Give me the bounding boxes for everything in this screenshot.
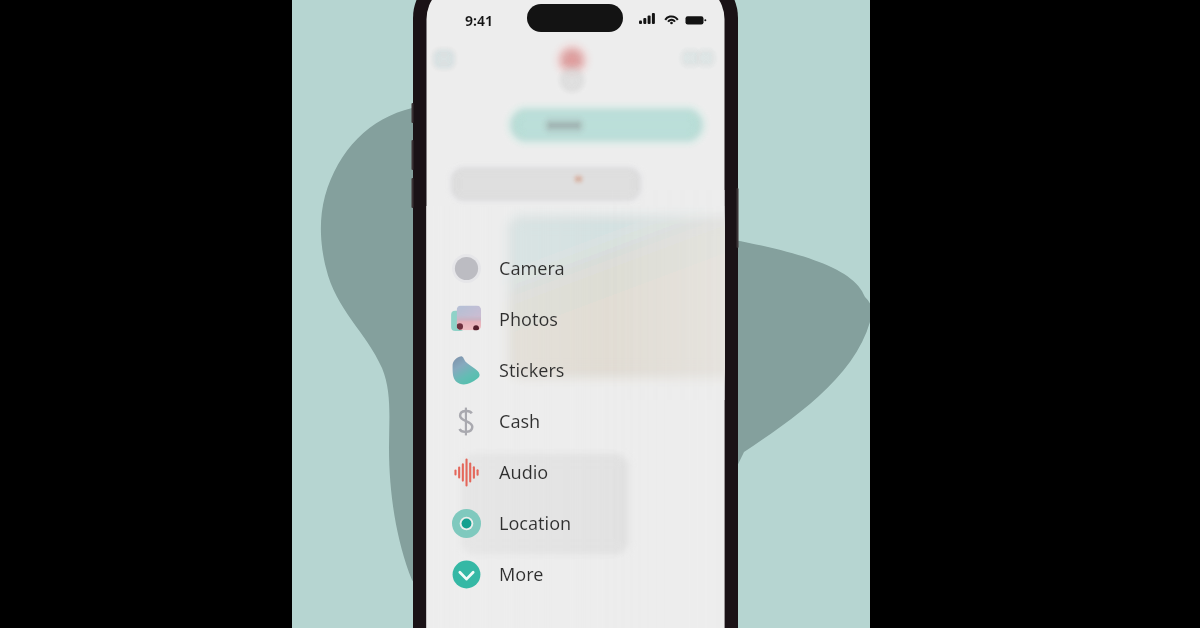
other: Stickers [452,356,481,385]
staticText: Location [499,511,572,536]
staticText: Photos [499,307,558,332]
button[interactable]: Camera [426,243,725,294]
staticText: Camera [499,256,565,281]
other: Cash [452,407,481,436]
button[interactable]: More [426,549,725,600]
staticText: Stickers [499,358,565,383]
staticText: 9:41 [465,11,493,30]
button[interactable]: Audio [426,447,725,498]
other: Audio [452,458,481,487]
other: Location [452,509,481,538]
staticText: More [499,562,544,587]
staticText: Audio [499,460,549,485]
other: Camera [452,254,481,283]
button[interactable]: Stickers [426,345,725,396]
button[interactable]: Location [426,498,725,549]
other: More [452,560,481,589]
other: Photos [452,305,481,334]
staticText: Cash [499,409,541,434]
button[interactable]: Cash [426,396,725,447]
button[interactable]: Photos [426,294,725,345]
